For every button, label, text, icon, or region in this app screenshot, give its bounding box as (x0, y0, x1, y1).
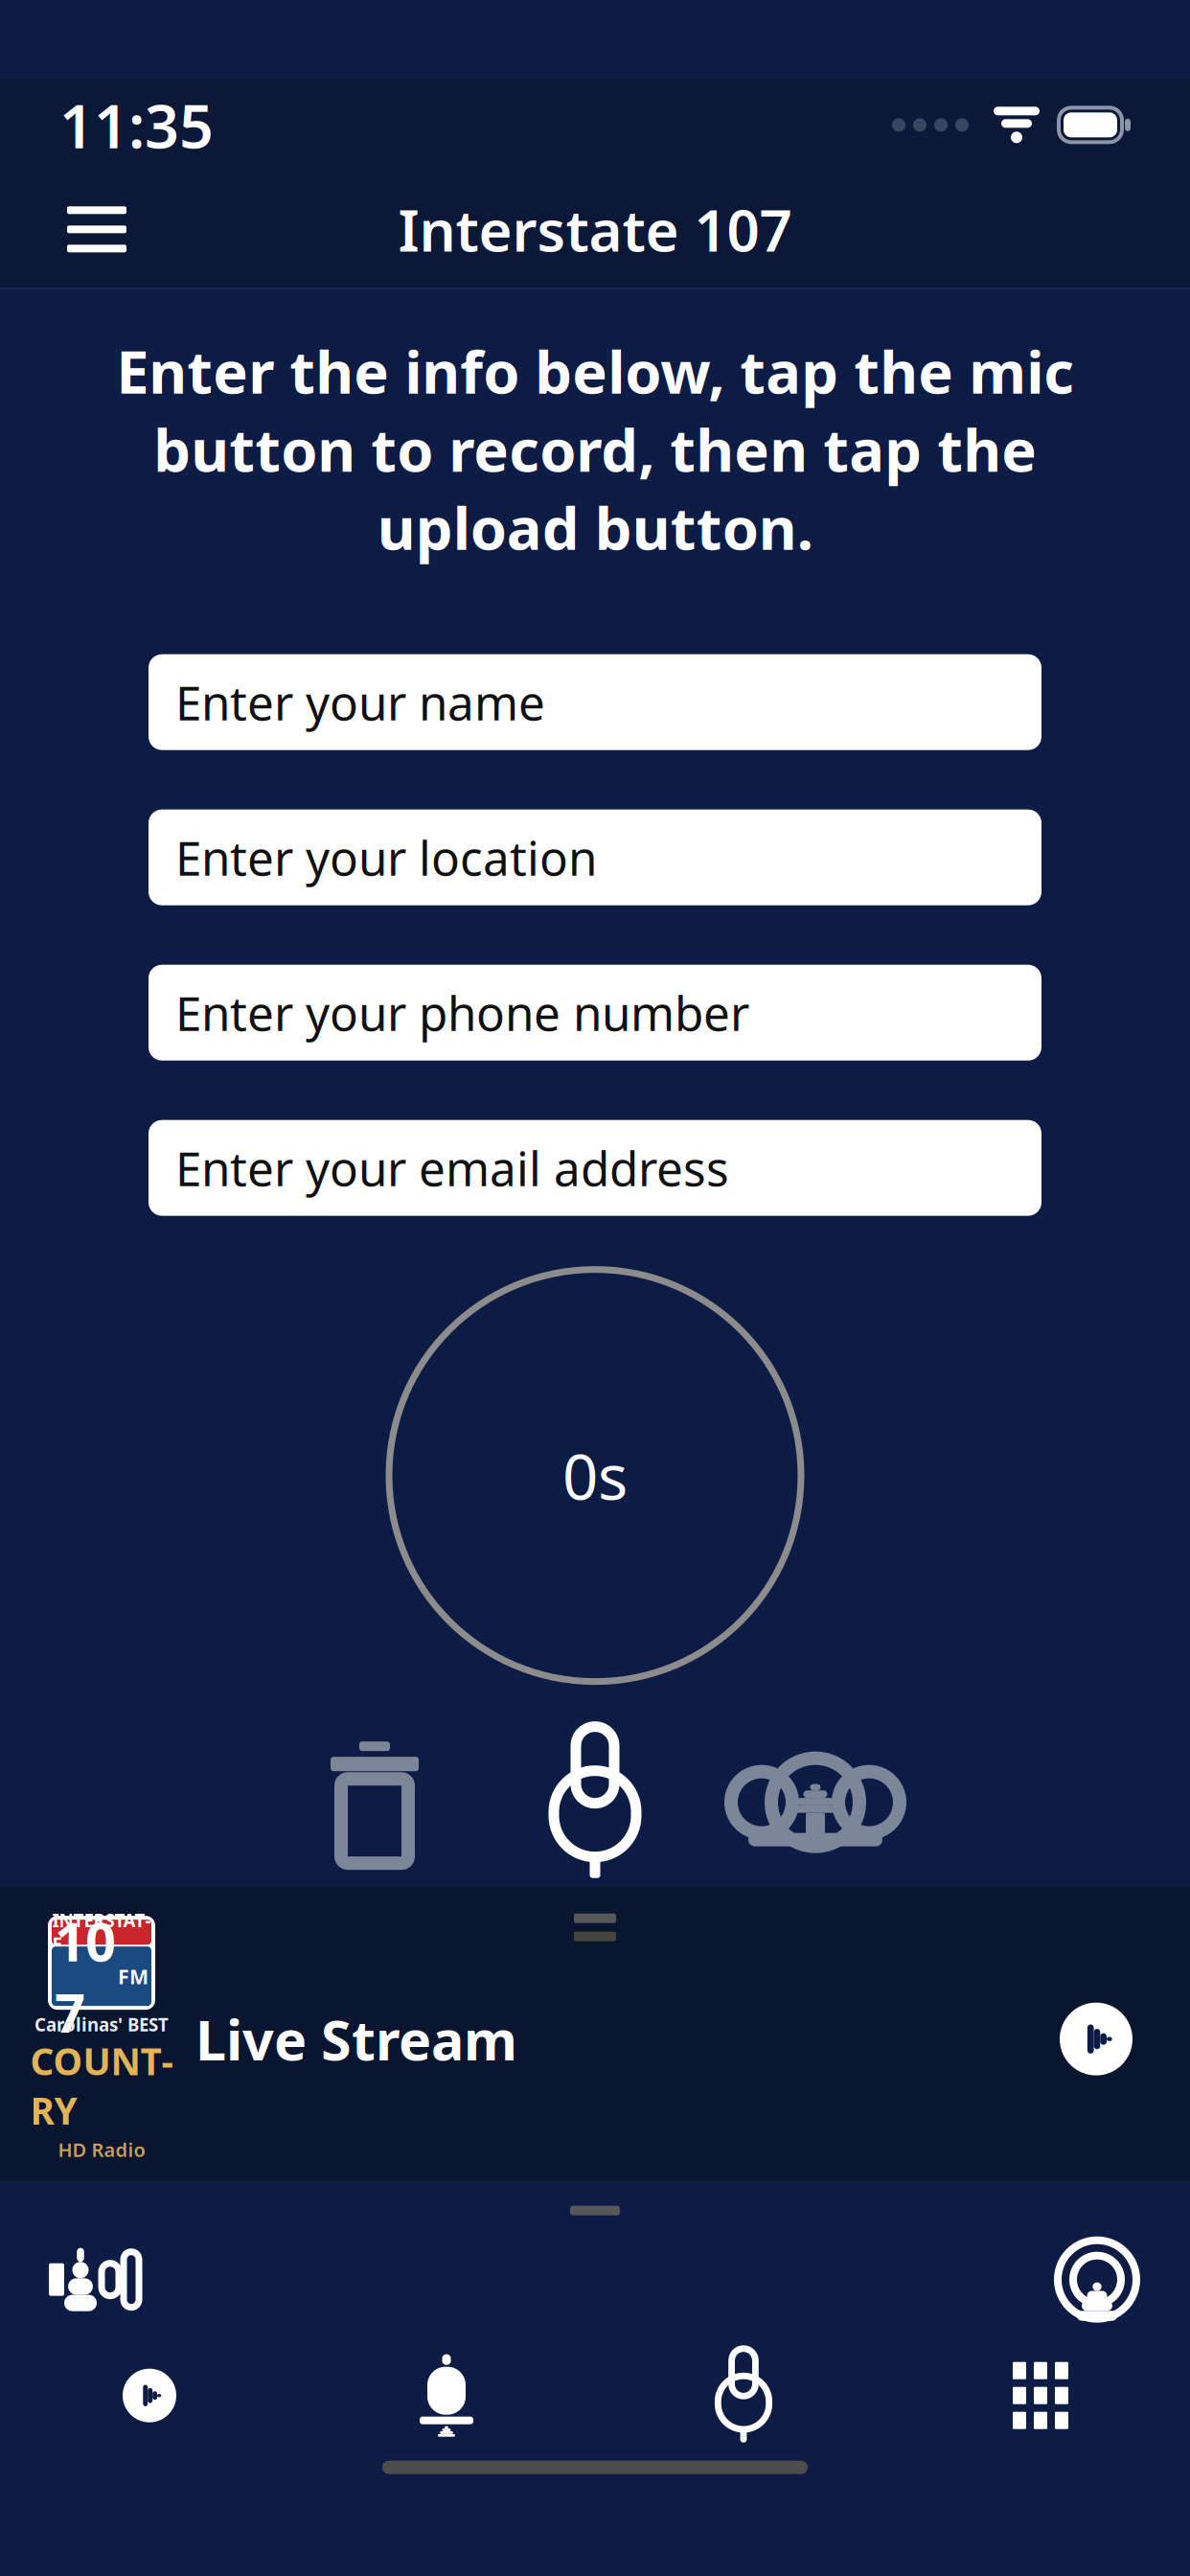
button[interactable]: More (892, 2350, 1189, 2442)
staticText: 0s (562, 1434, 628, 1517)
button[interactable]: Upload recording (705, 1726, 926, 1879)
staticText: Enter your name (175, 671, 545, 734)
button[interactable]: Enter your email address (149, 1120, 1041, 1216)
staticText: Enter your phone number (175, 981, 749, 1044)
staticText: FM (118, 1963, 149, 1990)
staticText: Live Stream (195, 2003, 517, 2075)
button[interactable]: Record (485, 1726, 705, 1879)
button[interactable]: AirPlay (1039, 2227, 1156, 2332)
staticText: Enter your email address (175, 1136, 729, 1199)
button[interactable]: Delete recording (264, 1726, 485, 1879)
button[interactable]: Alerts (298, 2350, 595, 2442)
staticText: 107 (55, 1905, 116, 2047)
staticText: 11:35 (59, 85, 214, 165)
staticText: Interstate 107 (398, 191, 792, 268)
button[interactable]: Enter your name (149, 654, 1041, 750)
button[interactable]: Menu (40, 183, 153, 275)
staticText: COUNTRY (30, 2036, 173, 2135)
button[interactable]: Enter your phone number (149, 965, 1041, 1061)
staticText: Enter your location (175, 826, 597, 889)
button[interactable]: Listen live (1, 2350, 298, 2442)
button[interactable]: Play live stream (1060, 2003, 1190, 2075)
staticText: Enter the info below, tap the mic button… (116, 332, 1074, 566)
button[interactable]: Enter your location (149, 810, 1041, 905)
staticText: INTERSTATE (52, 1908, 151, 1956)
staticText: HD Radio (58, 2137, 145, 2162)
staticText: Carolinas' BEST (34, 2013, 169, 2036)
button[interactable]: Record a message (595, 2350, 892, 2442)
button[interactable]: Volume (34, 2234, 153, 2326)
